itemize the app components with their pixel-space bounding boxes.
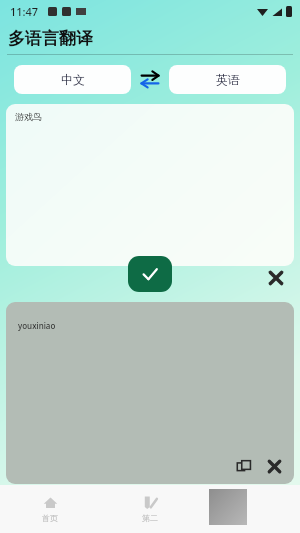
staticText: 首页 — [42, 513, 58, 523]
staticText: 中文 — [61, 72, 85, 87]
button[interactable]: Swap languages — [131, 64, 169, 94]
button[interactable]: Clear result — [264, 456, 284, 476]
button[interactable]: 英语 — [169, 65, 286, 94]
staticText: 游戏鸟 — [15, 111, 42, 122]
button[interactable]: 中文 — [14, 65, 131, 94]
staticText: youxiniao — [18, 320, 56, 331]
staticText: 英语 — [216, 72, 240, 87]
button[interactable]: Translate — [128, 256, 172, 292]
staticText: 11:47 — [10, 4, 39, 19]
staticText: 多语言翻译 — [8, 28, 93, 49]
button[interactable]: 游戏鸟 — [6, 104, 294, 266]
button[interactable]: 首页 — [0, 485, 100, 533]
staticText: 第二 — [142, 513, 158, 523]
button[interactable]: Copy — [234, 456, 254, 476]
button[interactable]: Clear source — [264, 266, 288, 290]
button[interactable]: youxiniao — [6, 302, 294, 484]
button[interactable]: Third tab — [200, 485, 300, 533]
button[interactable]: 第二 — [100, 485, 200, 533]
